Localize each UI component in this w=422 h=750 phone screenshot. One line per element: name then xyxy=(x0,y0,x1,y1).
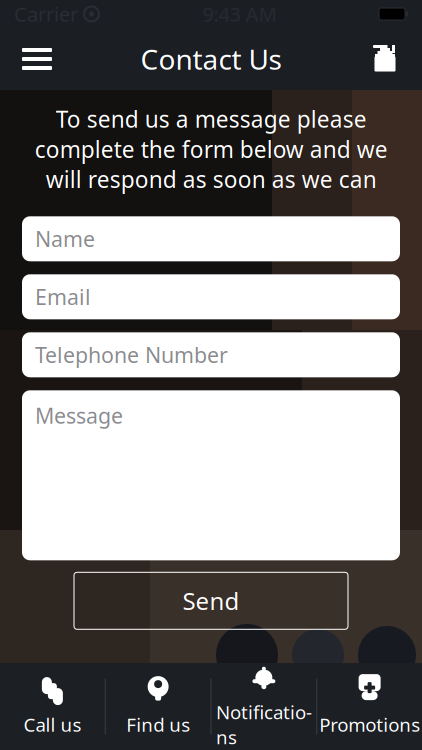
button[interactable]: Promotions xyxy=(317,663,422,750)
staticText: Call us xyxy=(23,712,81,737)
staticText: Telephone Number xyxy=(35,341,228,369)
staticText: Send xyxy=(182,585,239,617)
staticText: Email xyxy=(35,283,91,311)
staticText: To send us a message please complete the… xyxy=(34,104,387,194)
staticText: Notifications xyxy=(216,700,312,749)
staticText: Message xyxy=(35,401,123,430)
staticText: Promotions xyxy=(319,712,420,737)
button[interactable]: Notifications xyxy=(211,663,316,750)
staticText: 9:43 AM xyxy=(202,1,276,27)
staticText: Name xyxy=(35,225,95,253)
button[interactable]: Call us xyxy=(0,663,105,750)
staticText: Carrier xyxy=(14,1,78,27)
button[interactable]: Send xyxy=(74,572,348,629)
staticText: Contact Us xyxy=(140,40,281,78)
button[interactable]: Menu xyxy=(10,31,64,87)
staticText: Find us xyxy=(126,712,190,737)
button[interactable]: Home xyxy=(358,31,412,87)
button[interactable]: Find us xyxy=(106,663,211,750)
